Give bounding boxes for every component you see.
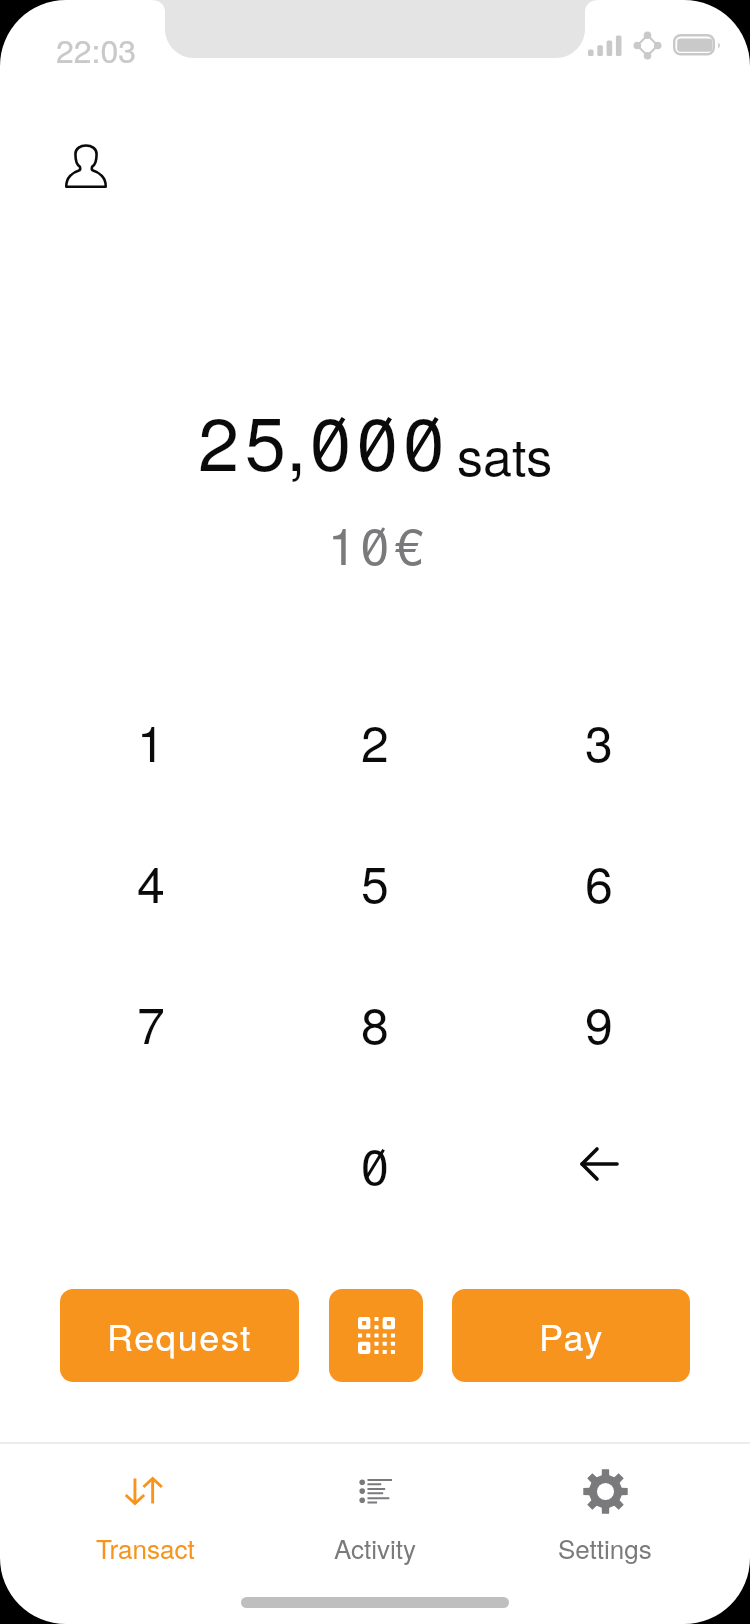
staticText: Pay bbox=[539, 1310, 604, 1362]
button[interactable]: Profile bbox=[65, 142, 107, 188]
button[interactable]: 2 bbox=[263, 670, 487, 811]
staticText: Transact bbox=[96, 1529, 195, 1566]
button[interactable]: 4 bbox=[39, 811, 263, 952]
button[interactable]: Pay bbox=[452, 1289, 690, 1382]
button[interactable]: 9 bbox=[487, 952, 711, 1093]
staticText: 000 bbox=[310, 386, 450, 492]
staticText: 10 bbox=[328, 506, 394, 579]
button[interactable]: Activity bbox=[260, 1444, 490, 1574]
staticText: 22:03 bbox=[56, 26, 137, 72]
staticText: 25 bbox=[198, 386, 292, 492]
staticText: , bbox=[286, 386, 304, 492]
staticText: 4 bbox=[137, 846, 165, 918]
button[interactable]: 7 bbox=[39, 952, 263, 1093]
staticText: 7 bbox=[137, 987, 165, 1059]
staticText: 2 bbox=[361, 705, 389, 777]
button[interactable]: Transact bbox=[30, 1444, 260, 1574]
staticText: 9 bbox=[585, 987, 613, 1059]
button[interactable]: 0 bbox=[263, 1093, 487, 1234]
staticText: 0 bbox=[361, 1128, 389, 1200]
other: Backspace bbox=[580, 1148, 618, 1180]
staticText: 1 bbox=[137, 705, 165, 777]
staticText: 3 bbox=[585, 705, 613, 777]
staticText: 8 bbox=[361, 987, 389, 1059]
button[interactable]: 8 bbox=[263, 952, 487, 1093]
button[interactable]: Request bbox=[60, 1289, 299, 1382]
staticText: Activity bbox=[334, 1529, 417, 1566]
button[interactable]: 5 bbox=[263, 811, 487, 952]
staticText: € bbox=[395, 506, 424, 579]
button[interactable]: 3 bbox=[487, 670, 711, 811]
button[interactable]: 1 bbox=[39, 670, 263, 811]
staticText: Request bbox=[107, 1310, 252, 1362]
button[interactable]: Settings bbox=[490, 1444, 720, 1574]
staticText: Settings bbox=[558, 1529, 652, 1566]
staticText: 6 bbox=[585, 846, 613, 918]
button[interactable]: Backspace bbox=[487, 1093, 711, 1234]
staticText: sats bbox=[457, 416, 553, 490]
button[interactable]: Scan QR code bbox=[329, 1289, 423, 1382]
staticText: 5 bbox=[361, 846, 389, 918]
button[interactable]: 6 bbox=[487, 811, 711, 952]
